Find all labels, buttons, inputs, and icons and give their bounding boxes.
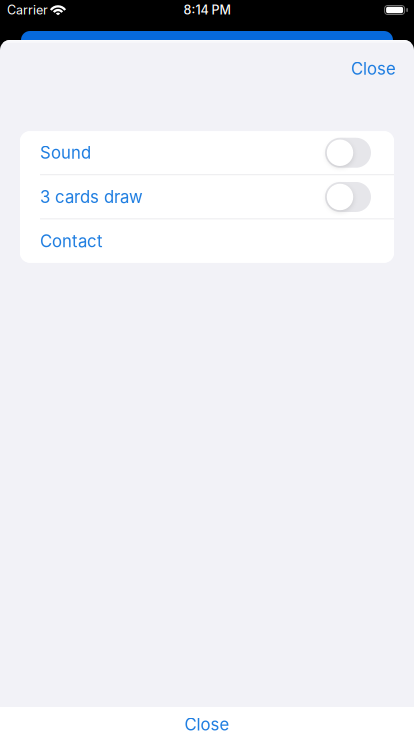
staticText: Sound — [40, 143, 91, 163]
button[interactable]: Contact — [20, 220, 394, 263]
button[interactable]: Toggle — [325, 138, 371, 168]
button[interactable]: 3 cards draw — [20, 175, 394, 219]
staticText: Close — [184, 714, 229, 735]
staticText: Close — [351, 58, 396, 79]
button[interactable]: Close — [0, 707, 414, 736]
staticText: 8:14 PM — [183, 2, 230, 18]
button[interactable]: Toggle — [325, 182, 371, 212]
button[interactable]: Close — [335, 48, 414, 89]
staticText: 3 cards draw — [40, 187, 143, 207]
button[interactable]: Sound — [20, 131, 394, 174]
staticText: Contact — [40, 231, 102, 251]
staticText: Carrier — [7, 2, 48, 18]
